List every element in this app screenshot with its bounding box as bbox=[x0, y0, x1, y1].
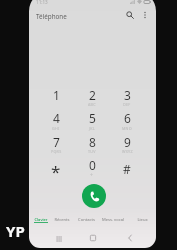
staticText: 3 bbox=[124, 87, 131, 103]
button[interactable]: Contacts bbox=[75, 217, 97, 230]
button[interactable] bbox=[109, 130, 145, 153]
staticText: 8 bbox=[89, 134, 96, 150]
button[interactable]: Home bbox=[85, 230, 101, 246]
button[interactable]: Recents bbox=[51, 231, 67, 247]
staticText: ABC bbox=[88, 102, 96, 107]
staticText: Récents bbox=[54, 217, 70, 223]
button[interactable] bbox=[109, 153, 145, 176]
button[interactable] bbox=[109, 107, 145, 130]
staticText: 0 bbox=[89, 157, 96, 173]
staticText: 6 bbox=[124, 110, 131, 126]
staticText: # bbox=[123, 161, 131, 177]
button[interactable]: Back bbox=[122, 230, 138, 246]
button[interactable] bbox=[109, 83, 145, 106]
staticText: + bbox=[90, 172, 94, 178]
button[interactable] bbox=[38, 130, 74, 153]
button[interactable]: More options bbox=[138, 8, 152, 22]
button[interactable]: Clavier bbox=[31, 217, 51, 230]
staticText: TUV bbox=[88, 149, 96, 154]
button[interactable]: Lieux bbox=[133, 217, 151, 230]
button[interactable] bbox=[75, 153, 111, 176]
staticText: 7 bbox=[53, 134, 60, 150]
button[interactable] bbox=[75, 83, 111, 106]
button[interactable] bbox=[38, 107, 74, 130]
staticText: PQRS bbox=[51, 149, 62, 154]
button[interactable] bbox=[38, 83, 74, 106]
staticText: Clavier bbox=[34, 217, 48, 223]
staticText: 2 bbox=[89, 87, 96, 103]
staticText: Contacts bbox=[78, 217, 95, 223]
button[interactable]: Récents bbox=[52, 217, 72, 230]
staticText: * bbox=[51, 160, 61, 178]
staticText: 5 bbox=[89, 110, 96, 126]
staticText: GHI bbox=[52, 126, 60, 131]
button[interactable]: Call bbox=[82, 184, 106, 208]
button[interactable] bbox=[75, 130, 111, 153]
staticText: Mess. vocal bbox=[102, 217, 124, 223]
staticText: 11:13 bbox=[36, 0, 48, 5]
staticText: Téléphone bbox=[36, 12, 67, 21]
button[interactable] bbox=[38, 153, 74, 176]
button[interactable] bbox=[75, 107, 111, 130]
staticText: WXYZ bbox=[122, 149, 133, 154]
staticText: 4 bbox=[53, 110, 60, 126]
staticText: Lieux bbox=[137, 217, 148, 223]
staticText: JKL bbox=[89, 126, 95, 131]
staticText: YP bbox=[6, 221, 25, 241]
staticText: DEF bbox=[123, 102, 131, 107]
button[interactable]: Search bbox=[123, 8, 137, 22]
staticText: 1 bbox=[53, 87, 60, 103]
staticText: MNO bbox=[122, 126, 132, 131]
button[interactable]: Mess. vocal bbox=[99, 217, 127, 230]
staticText: 9 bbox=[124, 134, 131, 150]
